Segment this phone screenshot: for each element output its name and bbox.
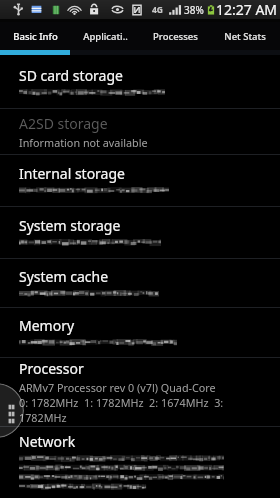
button[interactable]: SD card storage (0, 56, 280, 108)
staticText: System cache (19, 267, 109, 286)
staticText: Internal storage (19, 164, 125, 183)
button[interactable]: Applicati.. (70, 22, 140, 50)
staticText: System storage (19, 216, 121, 235)
button[interactable]: Internal storage (0, 155, 280, 206)
staticText: 38% (184, 3, 204, 17)
button[interactable]: Floating shortcut menu (0, 383, 24, 438)
button[interactable]: Processor (0, 358, 280, 426)
staticText: Basic Info (13, 30, 58, 43)
button[interactable]: Processes (140, 22, 210, 50)
staticText: ARMv7 Processor rev 0 (v7l) Quad-Core (19, 380, 216, 395)
staticText: Memory (19, 316, 75, 335)
button[interactable]: Basic Info (0, 22, 70, 50)
staticText: Processes (153, 30, 198, 43)
staticText: A2SD storage (19, 114, 108, 133)
staticText: Net Stats (224, 30, 266, 43)
staticText: Information not available (19, 135, 148, 150)
staticText: SD card storage (19, 66, 123, 85)
staticText: Applicati.. (83, 30, 128, 43)
staticText: 1782MHz (19, 410, 67, 425)
button[interactable]: System cache (0, 259, 280, 307)
button[interactable]: Memory (0, 308, 280, 357)
staticText: 12:27 AM (216, 0, 278, 19)
button[interactable]: Network (0, 427, 280, 498)
staticText: 0: 1782MHz 1: 1782MHz 2: 1674MHz 3: (19, 395, 224, 410)
staticText: Network (19, 432, 76, 451)
staticText: 4G (152, 4, 164, 16)
staticText: Processor (19, 359, 84, 378)
button[interactable]: A2SD storage (0, 109, 280, 154)
button[interactable]: System storage (0, 207, 280, 258)
button[interactable]: Net Stats (210, 22, 280, 50)
